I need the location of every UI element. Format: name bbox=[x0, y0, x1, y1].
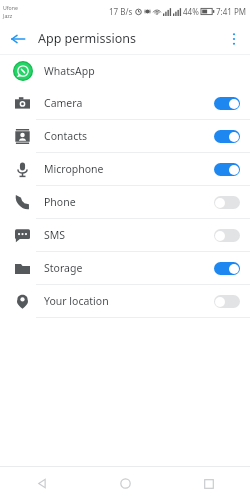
button[interactable]: Camera bbox=[0, 87, 250, 119]
button[interactable]: Microphone bbox=[0, 153, 250, 185]
button[interactable]: On bbox=[214, 262, 240, 275]
button[interactable]: Off bbox=[214, 295, 240, 308]
button[interactable]: Off bbox=[214, 196, 240, 209]
button[interactable]: Recents bbox=[167, 467, 250, 500]
staticText: SMS bbox=[44, 228, 66, 242]
button[interactable]: Your location bbox=[0, 285, 250, 317]
staticText: App permissions bbox=[38, 30, 136, 47]
button[interactable]: Storage bbox=[0, 252, 250, 284]
button[interactable]: On bbox=[214, 97, 240, 110]
button[interactable]: Off bbox=[214, 229, 240, 242]
button[interactable]: Phone bbox=[0, 186, 250, 218]
staticText: 44% bbox=[183, 6, 199, 17]
button[interactable]: Home bbox=[84, 467, 167, 500]
staticText: Jazz bbox=[3, 12, 13, 19]
button[interactable]: On bbox=[214, 130, 240, 143]
staticText: Camera bbox=[44, 96, 83, 110]
button[interactable]: On bbox=[214, 163, 240, 176]
staticText: Phone bbox=[44, 195, 76, 209]
staticText: Ufone bbox=[3, 4, 18, 11]
button[interactable]: Back bbox=[7, 28, 29, 50]
button[interactable]: WhatsApp bbox=[0, 55, 250, 87]
staticText: 7:41 PM bbox=[216, 6, 247, 17]
staticText: 17 B/s bbox=[109, 6, 133, 17]
button[interactable]: Contacts bbox=[0, 120, 250, 152]
staticText: WhatsApp bbox=[44, 64, 95, 78]
staticText: Your location bbox=[44, 294, 109, 308]
button[interactable]: SMS bbox=[0, 219, 250, 251]
staticText: Microphone bbox=[44, 162, 104, 176]
staticText: Contacts bbox=[44, 129, 88, 143]
staticText: Storage bbox=[44, 261, 83, 275]
button[interactable]: More options bbox=[223, 28, 245, 50]
button[interactable]: Back bbox=[0, 467, 84, 500]
